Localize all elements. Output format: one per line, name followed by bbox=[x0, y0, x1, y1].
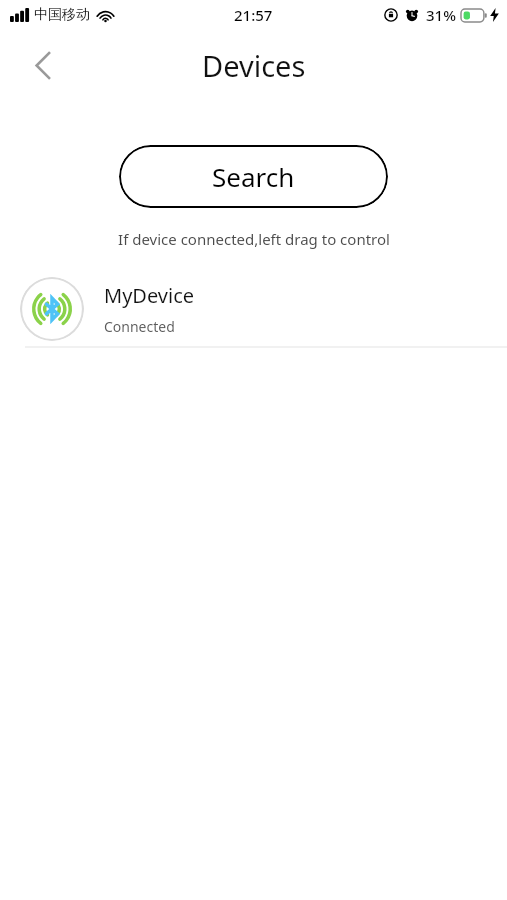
button[interactable]: MyDevice bbox=[0, 272, 507, 346]
staticText: If device connected,left drag to control bbox=[118, 229, 390, 249]
button[interactable]: Search bbox=[119, 145, 388, 208]
staticText: Devices bbox=[202, 46, 306, 85]
staticText: 31% bbox=[426, 5, 456, 25]
staticText: Connected bbox=[104, 317, 175, 336]
staticText: MyDevice bbox=[104, 282, 195, 309]
staticText: Search bbox=[212, 159, 295, 194]
button[interactable]: Back bbox=[21, 43, 65, 87]
staticText: 中国移动 bbox=[34, 6, 90, 24]
staticText: 21:57 bbox=[234, 5, 273, 25]
